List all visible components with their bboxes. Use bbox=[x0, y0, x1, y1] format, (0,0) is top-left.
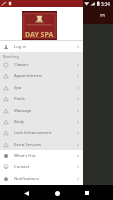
staticText: 3:34 bbox=[101, 1, 110, 7]
button[interactable]: Gallery bbox=[100, 13, 105, 18]
button[interactable]: Back bbox=[20, 187, 32, 199]
staticText: What's Hot bbox=[14, 153, 76, 159]
button[interactable]: Log in bbox=[0, 41, 83, 52]
staticText: Lash Enhancement bbox=[14, 130, 76, 136]
button[interactable]: Pools bbox=[0, 93, 83, 104]
staticText: Classes bbox=[14, 62, 76, 68]
button[interactable]: Massage bbox=[0, 105, 83, 116]
staticText: Notifications bbox=[14, 176, 76, 182]
button[interactable]: Home bbox=[51, 187, 63, 199]
staticText: Log in bbox=[14, 44, 76, 50]
button[interactable]: Classes bbox=[0, 59, 83, 70]
staticText: Contact bbox=[14, 164, 76, 170]
staticText: Spa bbox=[14, 85, 76, 91]
staticText: Body bbox=[14, 119, 76, 125]
staticText: Appointments bbox=[14, 73, 76, 79]
staticText: DAY SPA bbox=[25, 30, 54, 40]
staticText: Extra Services bbox=[14, 142, 76, 148]
button[interactable]: Lash Enhancement bbox=[0, 127, 83, 138]
button[interactable]: Appointments bbox=[0, 70, 83, 81]
button[interactable]: Notifications bbox=[0, 173, 83, 184]
button[interactable]: Spa bbox=[0, 82, 83, 93]
staticText: Pools bbox=[14, 96, 76, 102]
staticText: Massage bbox=[14, 108, 76, 114]
button[interactable]: What's Hot bbox=[0, 150, 83, 161]
staticText: Booking bbox=[3, 54, 19, 59]
button[interactable]: Extra Services bbox=[0, 139, 83, 150]
button[interactable]: Body bbox=[0, 116, 83, 127]
button[interactable]: Contact bbox=[0, 161, 83, 172]
button[interactable]: Recent apps bbox=[81, 187, 93, 199]
